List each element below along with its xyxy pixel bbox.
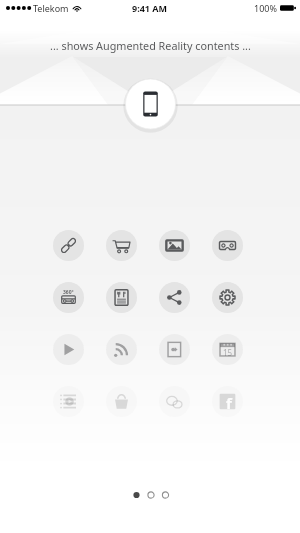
button[interactable]: Share	[159, 282, 190, 313]
button[interactable]: Virtual Reality	[212, 230, 243, 261]
button[interactable]: Playlist	[53, 386, 84, 417]
button[interactable]: Play video	[53, 334, 84, 365]
button[interactable]: Menu	[106, 282, 137, 313]
button[interactable]: Settings	[212, 282, 243, 313]
staticText: 9:41 AM	[132, 2, 168, 14]
staticText: Telekom	[33, 2, 69, 14]
button[interactable]: Media card	[159, 334, 190, 365]
button[interactable]: Shop	[106, 230, 137, 261]
button[interactable]: Basket	[106, 386, 137, 417]
button[interactable]: Gallery	[159, 230, 190, 261]
button[interactable]: Feed	[106, 334, 137, 365]
staticText: 15	[223, 347, 233, 358]
staticText: ... shows Augmented Reality contents ...	[50, 38, 251, 53]
button[interactable]: Link	[53, 230, 84, 261]
button[interactable]: 360 degree view	[53, 282, 84, 313]
button[interactable]: Chat	[159, 386, 190, 417]
staticText: f	[226, 393, 232, 413]
staticText: 360°	[63, 289, 74, 296]
staticText: 100%	[254, 2, 277, 14]
button[interactable]: Calendar	[212, 334, 243, 365]
button[interactable]: Facebook	[212, 386, 243, 417]
